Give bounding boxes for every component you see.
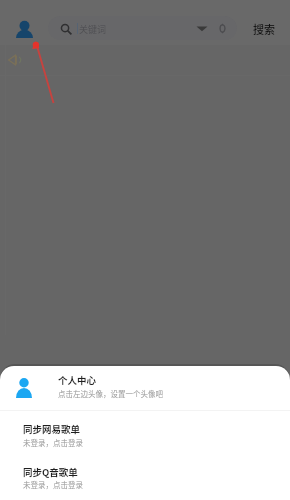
staticText: 搜索 (253, 21, 275, 37)
button[interactable]: 搜索 (247, 15, 283, 43)
button[interactable]: Account (4, 9, 45, 49)
staticText: 未登录，点击登录 (23, 437, 83, 448)
button[interactable]: 同步Q音歌单 (0, 455, 290, 499)
staticText: 未登录，点击登录 (23, 479, 83, 490)
staticText: 点击左边头像，设置一个头像吧 (58, 388, 163, 399)
staticText: 个人中心 (58, 373, 97, 387)
button[interactable]: 同步网易歌单 (0, 411, 290, 455)
staticText: 同步Q音歌单 (23, 465, 78, 479)
staticText: 关键词 (79, 23, 107, 36)
button[interactable]: Settings (217, 23, 228, 34)
button[interactable]: 个人中心 (0, 366, 290, 411)
button[interactable]: 关键词 (48, 16, 237, 40)
staticText: 同步网易歌单 (23, 422, 81, 436)
button[interactable]: Dropdown (196, 21, 208, 33)
button[interactable]: Sound (8, 55, 20, 65)
